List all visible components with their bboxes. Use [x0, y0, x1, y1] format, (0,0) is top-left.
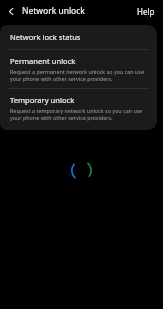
staticText: Network lock status	[10, 32, 81, 42]
staticText: Temporary unlock	[10, 95, 75, 105]
button[interactable]: Help	[129, 2, 163, 21]
button[interactable]: Back	[0, 0, 22, 22]
staticText: Help	[137, 6, 155, 17]
button[interactable]: Permanent unlock	[0, 50, 157, 88]
button[interactable]: Network lock status	[0, 25, 157, 49]
staticText: Network unlock	[22, 5, 85, 17]
staticText: Permanent unlock	[10, 56, 76, 66]
staticText: Request a temporary network unlock so yo…	[10, 107, 149, 121]
button[interactable]: Temporary unlock	[0, 89, 157, 130]
staticText: Request a permanent network unlock so yo…	[10, 68, 149, 82]
